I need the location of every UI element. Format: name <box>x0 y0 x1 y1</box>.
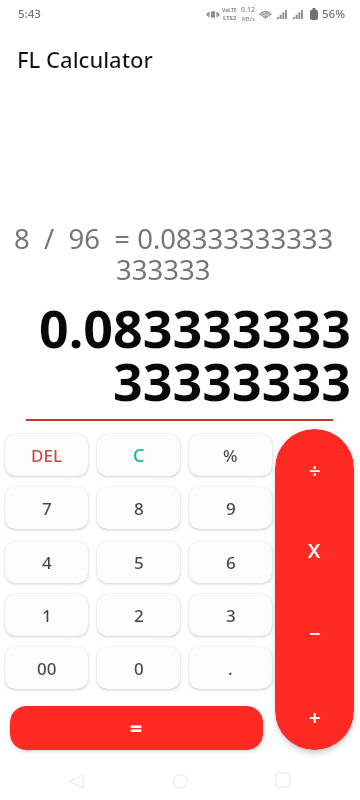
button[interactable]: 7 <box>5 487 88 529</box>
button[interactable]: % <box>189 434 272 476</box>
button[interactable]: . <box>189 647 272 689</box>
staticText: 333333 <box>116 251 211 288</box>
button[interactable]: 00 <box>5 647 88 689</box>
button[interactable]: − <box>275 596 354 670</box>
staticText: 0.08333333333333333 <box>20 292 351 417</box>
button[interactable]: 6 <box>189 541 272 583</box>
button[interactable]: 4 <box>5 541 88 583</box>
staticText: 1 <box>42 604 52 627</box>
button[interactable]: + <box>275 680 354 750</box>
button[interactable]: = <box>10 706 263 750</box>
staticText: % <box>223 444 238 467</box>
staticText: 2 <box>134 604 144 627</box>
staticText: 8 / 96 = 0.08333333333 <box>14 220 334 257</box>
button[interactable]: X <box>275 513 354 587</box>
staticText: C <box>133 443 145 468</box>
staticText: 6 <box>226 551 236 574</box>
staticText: KB/s <box>242 15 255 23</box>
staticText: 8 <box>134 497 144 520</box>
staticText: 5 <box>134 551 144 574</box>
button[interactable]: DEL <box>5 434 88 476</box>
staticText: 00 <box>37 657 57 680</box>
staticText: ÷ <box>309 457 321 484</box>
button[interactable]: 0 <box>97 647 180 689</box>
staticText: LTE2 <box>223 14 237 22</box>
staticText: DEL <box>31 444 62 467</box>
staticText: X <box>308 537 321 564</box>
staticText: 3 <box>226 604 236 627</box>
staticText: 7 <box>42 497 52 520</box>
button[interactable]: 3 <box>189 594 272 636</box>
staticText: − <box>309 620 321 647</box>
staticText: = <box>130 714 143 743</box>
staticText: 9 <box>226 497 236 520</box>
staticText: FL Calculator <box>17 44 153 74</box>
button[interactable]: 5 <box>97 541 180 583</box>
staticText: 4 <box>42 551 52 574</box>
button[interactable]: 8 <box>97 487 180 529</box>
staticText: VoLTE <box>222 7 237 14</box>
button[interactable]: 9 <box>189 487 272 529</box>
button[interactable]: 1 <box>5 594 88 636</box>
staticText: 56% <box>322 6 345 22</box>
staticText: . <box>228 657 233 680</box>
button[interactable]: ÷ <box>275 433 354 507</box>
staticText: 0.12 <box>241 5 255 15</box>
button[interactable]: C <box>97 434 180 476</box>
staticText: + <box>309 704 321 731</box>
staticText: 5:43 <box>18 6 41 22</box>
button[interactable]: 2 <box>97 594 180 636</box>
staticText: 0 <box>134 657 144 680</box>
